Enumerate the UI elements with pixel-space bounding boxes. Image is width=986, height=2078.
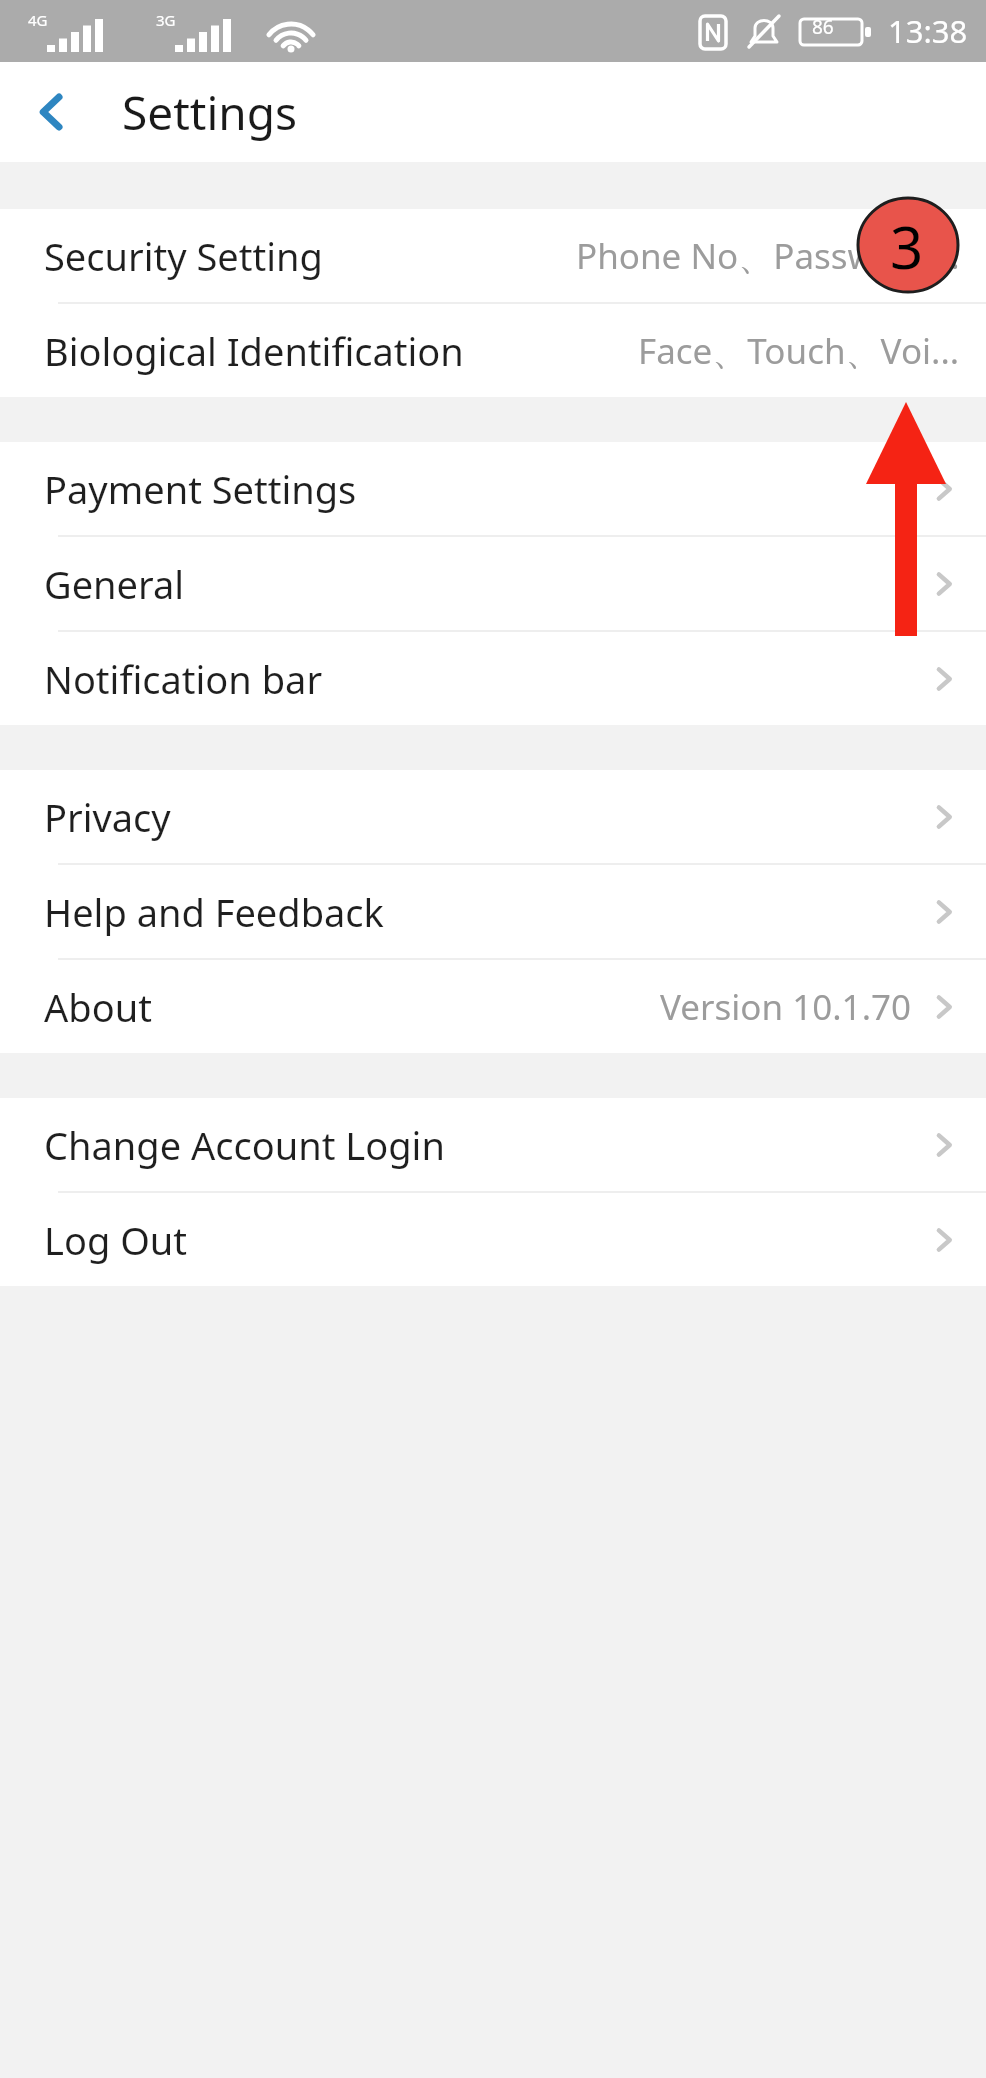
staticText: Notification bar: [44, 653, 323, 705]
button[interactable]: About: [0, 960, 986, 1053]
staticText: Security Setting: [44, 230, 323, 282]
staticText: Log Out: [44, 1214, 188, 1266]
staticText: Face、Touch、Voi...: [638, 327, 960, 375]
button[interactable]: Payment Settings: [0, 442, 986, 535]
button[interactable]: General: [0, 537, 986, 630]
staticText: 13:38: [888, 10, 968, 52]
button[interactable]: Log Out: [0, 1193, 986, 1286]
button[interactable]: Notification bar: [0, 632, 986, 725]
staticText: 3G: [156, 10, 176, 30]
staticText: About: [44, 981, 152, 1033]
staticText: 3: [890, 207, 924, 286]
staticText: Phone No、Password...: [576, 232, 960, 280]
staticText: Privacy: [44, 791, 171, 843]
staticText: 86: [812, 14, 834, 40]
staticText: Help and Feedback: [44, 886, 384, 938]
staticText: Payment Settings: [44, 463, 357, 515]
button[interactable]: Privacy: [0, 770, 986, 863]
staticText: Change Account Login: [44, 1119, 445, 1171]
button[interactable]: Back: [14, 74, 90, 150]
staticText: 4G: [28, 10, 48, 30]
staticText: Settings: [122, 81, 298, 144]
button[interactable]: Help and Feedback: [0, 865, 986, 958]
button[interactable]: Security Setting: [0, 209, 986, 302]
button[interactable]: Change Account Login: [0, 1098, 986, 1191]
staticText: General: [44, 558, 185, 610]
button[interactable]: Biological Identification: [0, 304, 986, 397]
staticText: Version 10.1.70: [660, 983, 912, 1031]
staticText: Biological Identification: [44, 325, 464, 377]
